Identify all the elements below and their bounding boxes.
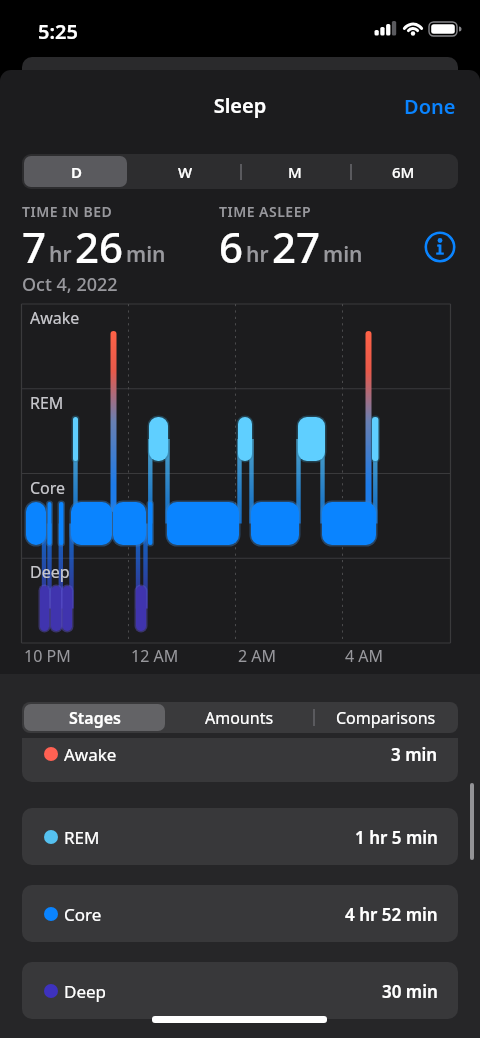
staticText: Amounts: [205, 707, 274, 729]
staticText: 12 AM: [131, 645, 179, 667]
button[interactable]: D: [22, 154, 131, 189]
button[interactable]: Deep: [22, 962, 458, 1019]
button[interactable]: Comparisons: [313, 702, 458, 733]
staticText: 6M: [392, 162, 415, 182]
staticText: TIME IN BED: [22, 202, 113, 221]
staticText: Deep: [64, 980, 107, 1003]
staticText: 5:25: [38, 18, 78, 45]
staticText: 4 hr 52 min: [345, 903, 438, 926]
staticText: 26: [75, 218, 124, 275]
staticText: W: [178, 162, 193, 182]
staticText: 27: [272, 218, 321, 275]
staticText: 10 PM: [24, 645, 71, 667]
staticText: Awake: [30, 307, 80, 329]
staticText: min: [126, 240, 166, 269]
staticText: 3 min: [391, 743, 438, 766]
staticText: Core: [30, 477, 66, 499]
staticText: hr: [49, 240, 72, 269]
staticText: Comparisons: [336, 707, 436, 729]
staticText: REM: [30, 392, 64, 414]
staticText: Core: [64, 903, 102, 926]
button[interactable]: Done: [404, 93, 456, 120]
staticText: Deep: [30, 561, 70, 583]
button[interactable]: Amounts: [167, 702, 312, 733]
staticText: Oct 4, 2022: [22, 272, 118, 297]
staticText: 6: [219, 218, 244, 275]
button[interactable]: REM: [22, 808, 458, 865]
button[interactable]: Awake: [22, 738, 458, 782]
staticText: Awake: [64, 743, 117, 766]
staticText: Sleep: [0, 92, 480, 119]
button[interactable]: W: [131, 154, 240, 189]
button[interactable]: M: [240, 154, 349, 189]
staticText: D: [71, 162, 82, 182]
staticText: M: [288, 162, 302, 182]
button[interactable]: [24, 704, 165, 731]
button[interactable]: Stages: [22, 702, 167, 733]
staticText: REM: [64, 826, 100, 849]
staticText: min: [323, 240, 363, 269]
button[interactable]: 6M: [349, 154, 458, 189]
button[interactable]: [24, 156, 127, 187]
staticText: 7: [22, 218, 47, 275]
staticText: TIME ASLEEP: [219, 202, 312, 221]
staticText: 2 AM: [238, 645, 277, 667]
staticText: Stages: [69, 707, 121, 729]
button[interactable]: [424, 231, 456, 263]
staticText: 30 min: [382, 980, 438, 1003]
staticText: hr: [246, 240, 269, 269]
button[interactable]: Core: [22, 885, 458, 942]
staticText: 1 hr 5 min: [355, 826, 438, 849]
staticText: 4 AM: [345, 645, 384, 667]
